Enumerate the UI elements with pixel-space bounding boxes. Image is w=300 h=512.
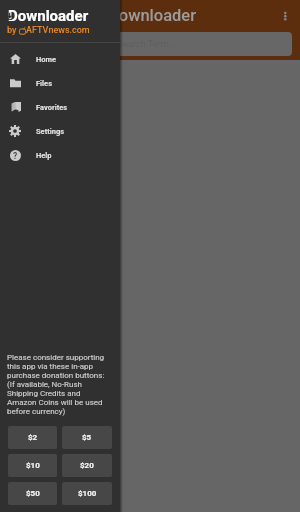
staticText: Settings (36, 127, 65, 136)
staticText: $2 (28, 433, 38, 442)
button[interactable]: Files (0, 71, 120, 95)
button[interactable]: Home (0, 47, 120, 71)
button[interactable]: $20 (62, 454, 112, 477)
button[interactable]: $100 (62, 482, 112, 505)
staticText: $50 (26, 489, 40, 498)
staticText: Please consider supporting this app via … (7, 353, 105, 416)
staticText: AFTVnews.com (26, 25, 90, 36)
staticText: Downloader (8, 7, 89, 25)
button[interactable]: $50 (8, 482, 57, 505)
staticText: $20 (80, 461, 94, 470)
button[interactable]: $10 (8, 454, 57, 477)
staticText: $100 (78, 489, 97, 498)
staticText: Search Term... (118, 39, 176, 50)
button[interactable]: $5 (62, 426, 112, 449)
staticText: ? (13, 151, 18, 161)
button[interactable]: ? (0, 143, 120, 167)
button[interactable]: $2 (8, 426, 57, 449)
staticText: $10 (26, 461, 40, 470)
staticText: Downloader (108, 6, 196, 25)
button[interactable]: Favorites (0, 95, 120, 119)
button[interactable]: Search Term... (9, 32, 292, 56)
staticText: Files (36, 79, 52, 88)
staticText: by (7, 25, 19, 36)
button[interactable]: Settings (0, 119, 120, 143)
button[interactable]: More options (273, 4, 297, 28)
staticText: Help (36, 151, 52, 160)
staticText: Favorites (36, 103, 68, 112)
staticText: Home (36, 55, 57, 64)
staticText: $5 (82, 433, 92, 442)
